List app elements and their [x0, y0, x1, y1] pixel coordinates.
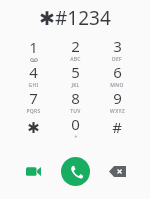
button[interactable]: 9 [96, 88, 138, 114]
staticText: JKL [71, 82, 80, 88]
button[interactable]: 1 [12, 36, 54, 62]
staticText: ✱ [27, 119, 40, 136]
staticText: 2 [71, 36, 80, 56]
staticText: DEF [112, 56, 122, 62]
staticText: ✱#1234 [39, 5, 111, 31]
button[interactable]: 6 [96, 62, 138, 88]
staticText: 0 [71, 114, 80, 134]
button[interactable]: # [96, 114, 138, 140]
staticText: 8 [71, 88, 80, 108]
staticText: 9 [113, 88, 122, 108]
staticText: + [74, 134, 78, 140]
staticText: 4 [29, 62, 38, 82]
button[interactable]: 2 [54, 36, 96, 62]
staticText: WXYZ [110, 108, 125, 114]
button[interactable]: 8 [54, 88, 96, 114]
staticText: TUV [70, 108, 81, 114]
staticText: 3 [113, 36, 122, 56]
button[interactable]: 3 [96, 36, 138, 62]
button[interactable]: 0 [54, 114, 96, 140]
staticText: GHI [28, 82, 39, 88]
button[interactable]: 7 [12, 88, 54, 114]
button[interactable]: Call [61, 157, 90, 186]
staticText: ABC [70, 56, 81, 62]
button[interactable]: 4 [12, 62, 54, 88]
button[interactable]: Backspace [96, 151, 138, 191]
staticText: 6 [113, 62, 122, 82]
staticText: PQRS [26, 108, 41, 114]
button[interactable]: ✱ [12, 114, 54, 140]
staticText: 1 [29, 37, 38, 57]
button[interactable]: 5 [54, 62, 96, 88]
staticText: # [112, 117, 122, 137]
staticText: MNO [110, 82, 124, 88]
staticText: 7 [29, 88, 38, 108]
button[interactable]: Video call [12, 151, 54, 191]
staticText: 5 [71, 62, 80, 82]
